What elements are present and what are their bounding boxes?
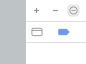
button[interactable]: Display options	[68, 0, 79, 21]
button[interactable]: Marker	[58, 22, 70, 42]
button[interactable]: Zoom in	[26, 0, 47, 21]
button[interactable]: Window	[26, 22, 48, 42]
button[interactable]: Zoom out	[47, 0, 64, 21]
